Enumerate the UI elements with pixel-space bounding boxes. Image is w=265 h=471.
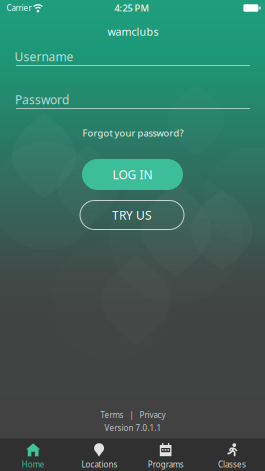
button[interactable]: Privacy	[139, 410, 165, 420]
button[interactable]: Terms	[100, 410, 123, 420]
staticText: LOG IN	[112, 166, 152, 182]
button[interactable]: Forgot your password?	[78, 124, 187, 142]
staticText: TRY US	[112, 207, 152, 223]
staticText: 4:25 PM	[114, 2, 149, 14]
button[interactable]: Home	[0, 438, 66, 471]
button[interactable]: LOG IN	[82, 159, 183, 190]
staticText: Locations	[81, 459, 117, 470]
button[interactable]: Classes	[199, 438, 265, 471]
staticText: Terms	[100, 410, 123, 420]
staticText: Home	[22, 459, 45, 470]
staticText: Programs	[148, 459, 184, 470]
staticText: Version 7.0.1.1	[104, 423, 161, 433]
staticText: Privacy	[139, 410, 165, 420]
button[interactable]: TRY US	[80, 200, 184, 229]
button[interactable]: Programs	[132, 438, 199, 471]
staticText: Forgot your password?	[82, 127, 183, 139]
staticText: wamclubs	[107, 24, 158, 39]
staticText: Username	[14, 48, 73, 64]
button[interactable]: Locations	[66, 438, 132, 471]
staticText: Carrier	[6, 3, 31, 13]
staticText: |	[129, 410, 133, 420]
staticText: Classes	[218, 459, 246, 470]
staticText: Password	[15, 91, 69, 107]
